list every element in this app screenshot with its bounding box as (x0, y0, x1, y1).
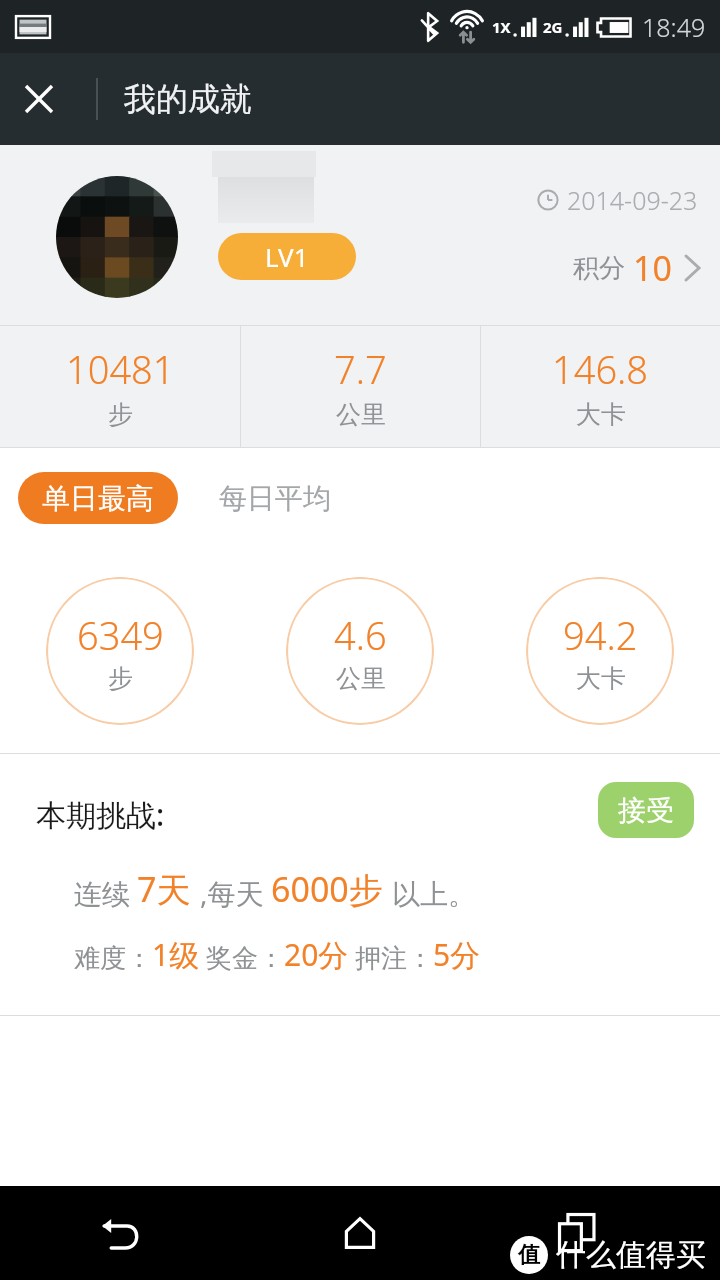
staticText: 什么值得买 (556, 1236, 706, 1274)
button[interactable]: 10481 (0, 326, 240, 447)
button[interactable]: Back (0, 1186, 240, 1280)
button[interactable]: 146.8 (481, 326, 720, 447)
staticText: 值 (518, 1241, 540, 1269)
staticText: 1X (492, 17, 511, 37)
staticText: 积分 (573, 252, 625, 285)
button[interactable]: 单日最高 (18, 472, 178, 524)
staticText: ,每天 (200, 874, 264, 912)
button[interactable]: 94.2 (526, 577, 674, 725)
staticText: 押注： (355, 942, 433, 975)
staticText: LV1 (265, 239, 309, 274)
staticText: 6349 (77, 609, 164, 661)
staticText: 2014-09-23 (567, 183, 698, 217)
staticText: 146.8 (552, 343, 649, 395)
staticText: 步 (108, 399, 133, 430)
button[interactable]: Close (0, 60, 78, 138)
staticText: 10 (633, 245, 672, 291)
button[interactable]: Recents (480, 1186, 720, 1280)
staticText: 1级 (152, 934, 200, 975)
button[interactable]: 4.6 (286, 577, 434, 725)
button[interactable]: 接受 (598, 782, 694, 838)
staticText: 公里 (336, 663, 386, 694)
staticText: 大卡 (576, 663, 626, 694)
staticText: 4.6 (334, 609, 387, 661)
staticText: 单日最高 (42, 481, 154, 516)
button[interactable]: 6349 (46, 577, 194, 725)
staticText: 难度： (74, 942, 152, 975)
staticText: 本期挑战: (36, 794, 165, 835)
staticText: 公里 (336, 399, 386, 430)
button[interactable]: LV1 (0, 145, 720, 325)
staticText: 10481 (66, 343, 175, 395)
staticText: 连续 (74, 877, 130, 912)
button[interactable]: LV1 (218, 233, 356, 280)
staticText: 大卡 (576, 399, 626, 430)
staticText: 7.7 (334, 343, 387, 395)
button[interactable]: 每日平均 (200, 472, 350, 524)
staticText: 我的成就 (124, 79, 252, 119)
staticText: 7天 (137, 866, 191, 912)
staticText: 5分 (433, 934, 481, 975)
staticText: 6000步 (271, 866, 383, 912)
staticText: 奖金： (206, 942, 284, 975)
staticText: 94.2 (563, 609, 638, 661)
staticText: 步 (108, 663, 133, 694)
staticText: 接受 (618, 793, 674, 828)
button[interactable]: Home (240, 1186, 480, 1280)
staticText: 20分 (284, 934, 349, 975)
staticText: 以上。 (392, 877, 476, 912)
staticText: 每日平均 (219, 481, 331, 516)
staticText: 2G (543, 17, 563, 37)
button[interactable]: 7.7 (241, 326, 480, 447)
staticText: 18:49 (642, 10, 706, 44)
